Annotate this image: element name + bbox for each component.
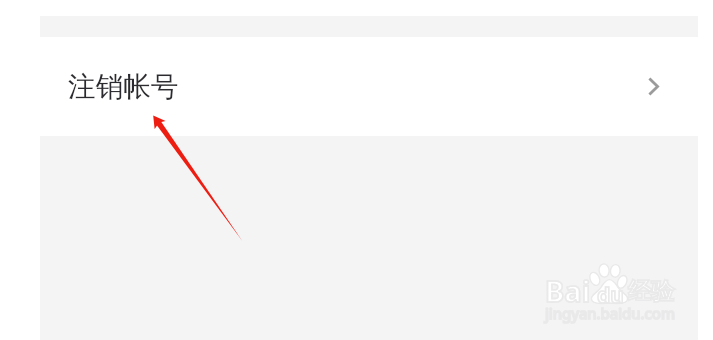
other: 打开注销帐号 [648,77,659,96]
staticText: du [597,281,624,310]
staticText: 经验 [628,277,674,306]
staticText: 注销帐号 [68,69,179,104]
staticText: jingyan.baidu.com [545,303,675,323]
staticText: jingyan.baidu.com [545,303,675,323]
staticText: 经验 [628,277,674,306]
button[interactable]: 注销帐号 [40,37,698,136]
staticText: Bai [545,271,591,310]
staticText: Bai [545,271,591,310]
